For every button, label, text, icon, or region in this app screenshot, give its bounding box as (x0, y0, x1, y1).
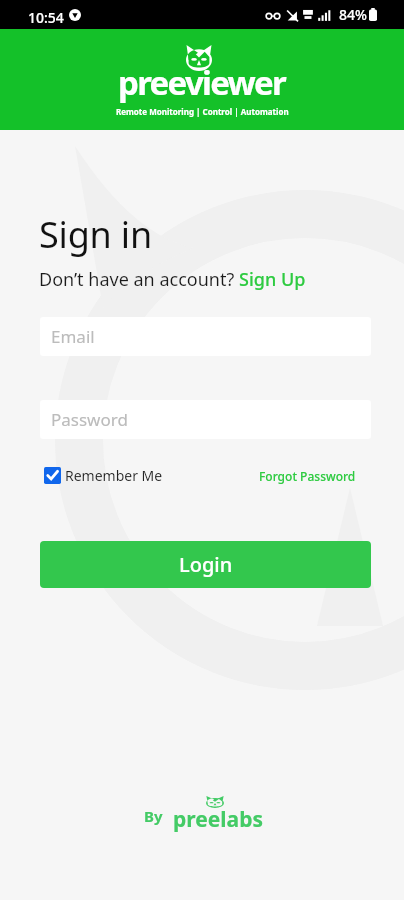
button[interactable]: Sign Up (239, 267, 306, 292)
staticText: preelabs (173, 805, 263, 834)
button[interactable]: Forgot Password (259, 468, 356, 484)
button[interactable]: Remember me checkbox (44, 466, 163, 485)
staticText: 84% (339, 5, 367, 24)
button[interactable]: Email (40, 317, 371, 356)
staticText: Email (51, 325, 95, 348)
staticText: Password (51, 408, 128, 431)
staticText: Sign in (39, 210, 152, 259)
staticText: Sign Up (239, 267, 306, 292)
button[interactable]: Password (40, 400, 371, 439)
other: Remember me checkbox (44, 467, 61, 484)
staticText: Don’t have an account? (39, 267, 239, 292)
staticText: Remember Me (65, 466, 163, 485)
staticText: Remote Monitoring | Control | Automation (116, 106, 289, 117)
button[interactable]: Login (40, 541, 371, 588)
staticText: By (144, 806, 163, 826)
staticText: Forgot Password (259, 468, 356, 484)
staticText: Login (179, 551, 233, 578)
staticText: preeviewer (118, 60, 286, 105)
staticText: 10:54 (28, 8, 64, 27)
